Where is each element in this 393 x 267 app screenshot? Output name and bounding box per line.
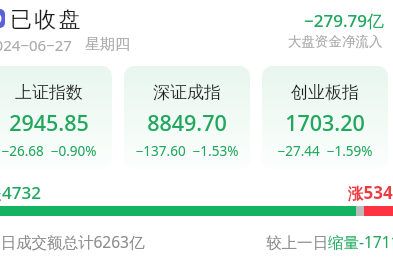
button[interactable]: 创业板指 [262,66,388,169]
staticText: −137.60 −1.53% [124,142,250,160]
staticText: 创业板指 [262,82,388,103]
staticText: 大盘资金净流入 [288,33,383,50]
staticText: 星期四 [85,35,130,54]
staticText: 深证成指 [124,82,250,103]
staticText: 2024−06−27 [0,35,72,55]
other: Market closed [0,9,5,28]
staticText: 已收盘 [10,6,83,34]
staticText: 涨534 [348,181,393,204]
staticText: 较上一日缩量-1711亿 [266,231,393,252]
button[interactable]: Advancers and decliners [0,206,393,216]
staticText: 今日成交额总计6263亿 [0,231,145,252]
staticText: −279.79亿 [304,9,385,32]
staticText: 上证指数 [0,82,112,103]
button[interactable]: 上证指数 [0,66,112,169]
staticText: −26.68 −0.90% [0,142,112,160]
button[interactable]: 深证成指 [124,66,250,169]
staticText: 2945.85 [0,108,112,137]
staticText: 1703.20 [262,108,388,137]
staticText: −27.44 −1.59% [262,142,388,160]
staticText: 跌4732 [0,181,41,204]
staticText: 8849.70 [124,108,250,137]
